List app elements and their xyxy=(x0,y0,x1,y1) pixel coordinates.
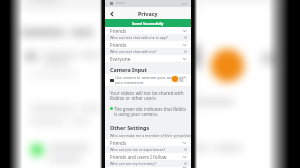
button[interactable]: Who can join me in experiences? xyxy=(105,146,191,153)
staticText: Who can text chat with me? xyxy=(110,49,157,54)
staticText: Privacy xyxy=(138,10,158,17)
staticText: The green dot indicates that Roblox is u… xyxy=(114,106,186,118)
staticText: Who can text chat with me in app? xyxy=(110,35,168,40)
button[interactable]: Friends xyxy=(105,41,191,48)
staticText: Saved Successfully xyxy=(132,21,164,26)
button[interactable]: Who can make me a member of their privat… xyxy=(105,132,191,139)
staticText: Friends and users I follow xyxy=(110,154,167,160)
staticText: Who can see my inventory? xyxy=(110,161,157,166)
button[interactable]: Everyone xyxy=(105,55,191,62)
staticText: Camera Input xyxy=(110,66,147,73)
staticText: Your videos will not be shared with Robl… xyxy=(110,90,184,102)
button[interactable]: Who can see my inventory? xyxy=(105,160,191,167)
button[interactable]: Who can text chat with me in app? xyxy=(105,34,191,41)
staticText: Friends xyxy=(110,140,127,146)
staticText: Friends xyxy=(110,28,127,34)
staticText: Use camera to animate your avatar with y… xyxy=(115,75,186,85)
staticText: Everyone xyxy=(110,56,131,62)
button[interactable]: Friends xyxy=(105,139,191,146)
button[interactable]: Use camera to animate your avatar with y… xyxy=(105,74,191,86)
staticText: Other Settings xyxy=(110,124,150,131)
button[interactable]: Back xyxy=(107,9,116,18)
button[interactable]: Who can text chat with me? xyxy=(105,48,191,55)
button[interactable]: Friends xyxy=(105,167,191,168)
button[interactable]: Friends and users I follow xyxy=(105,153,191,160)
staticText: Who can join me in experiences? xyxy=(110,147,165,152)
button[interactable]: Friends xyxy=(105,27,191,34)
staticText: Who can make me a member of their privat… xyxy=(110,133,191,138)
staticText: Friends xyxy=(110,42,127,48)
